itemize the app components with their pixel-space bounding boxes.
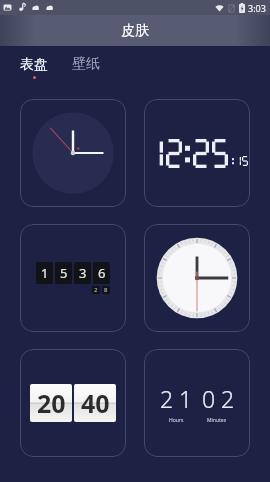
staticText: 2 <box>221 383 235 414</box>
button[interactable]: Dark analog watch face <box>20 99 126 207</box>
staticText: 3 <box>79 264 87 282</box>
staticText: 8 <box>104 286 108 294</box>
staticText: 2 <box>160 383 174 414</box>
button[interactable]: White analog watch face <box>144 224 250 332</box>
button[interactable]: Dark flip clock watch face <box>20 224 126 332</box>
button[interactable]: Digital LCD watch face <box>144 99 250 207</box>
staticText: Hours <box>169 417 184 424</box>
staticText: 1 <box>41 264 49 282</box>
button[interactable]: Hours minutes watch face <box>144 349 250 457</box>
button[interactable]: White flip clock watch face <box>20 349 126 457</box>
staticText: 20 <box>37 386 66 420</box>
button[interactable]: 壁纸 <box>70 54 102 80</box>
staticText: 6 <box>98 264 106 282</box>
staticText: 40 <box>81 386 110 420</box>
staticText: 壁纸 <box>72 55 100 73</box>
staticText: 5 <box>60 264 68 282</box>
staticText: 皮肤 <box>121 22 149 40</box>
staticText: 表盘 <box>20 56 48 74</box>
staticText: 2 <box>94 286 98 294</box>
staticText: 3:03 <box>248 2 266 14</box>
button[interactable]: 表盘 <box>18 56 50 79</box>
staticText: 1 <box>179 383 193 414</box>
staticText: 0 <box>202 383 216 414</box>
staticText: Minutes <box>207 417 227 424</box>
